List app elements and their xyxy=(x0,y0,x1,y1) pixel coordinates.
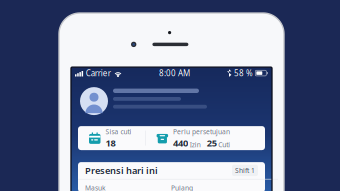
staticText: 18 xyxy=(105,137,115,149)
staticText: Masuk xyxy=(85,183,106,191)
staticText: Izin xyxy=(190,140,201,149)
staticText: Sisa cuti xyxy=(105,127,131,136)
staticText: 25 xyxy=(207,137,217,149)
staticText: Shift 1 xyxy=(235,166,255,175)
staticText: Carrier xyxy=(86,68,111,78)
button[interactable]: Sisa cuti xyxy=(78,126,145,150)
staticText: Perlu persetujuan xyxy=(173,127,230,136)
button[interactable]: Perlu persetujuan xyxy=(146,126,265,150)
staticText: 58 % xyxy=(234,68,253,78)
staticText: 440 xyxy=(173,137,188,149)
staticText: Presensi hari ini xyxy=(85,164,158,177)
staticText: 8:00 AM xyxy=(159,68,190,78)
staticText: Pulang xyxy=(171,183,193,191)
staticText: Cuti xyxy=(218,140,230,149)
button[interactable] xyxy=(71,79,272,127)
